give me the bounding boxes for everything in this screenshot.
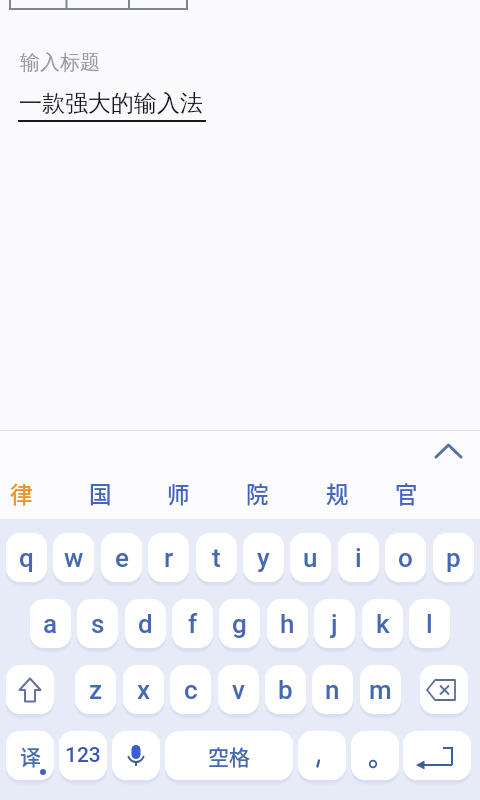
staticText: t: [212, 543, 221, 573]
button[interactable]: o: [385, 533, 426, 582]
button[interactable]: y: [243, 533, 284, 582]
button[interactable]: p: [433, 533, 474, 582]
staticText: 院: [246, 477, 269, 510]
staticText: p: [446, 543, 461, 573]
button[interactable]: g: [219, 599, 260, 648]
button[interactable]: w: [53, 533, 94, 582]
staticText: r: [164, 543, 174, 573]
staticText: 译: [20, 741, 41, 771]
staticText: h: [280, 609, 295, 639]
button[interactable]: l: [409, 599, 450, 648]
staticText: 空格: [208, 741, 250, 771]
button[interactable]: j: [314, 599, 355, 648]
button[interactable]: e: [101, 533, 142, 582]
staticText: 规: [326, 477, 349, 510]
staticText: j: [331, 609, 338, 639]
staticText: m: [369, 675, 392, 705]
staticText: 官: [395, 477, 418, 510]
button[interactable]: [420, 665, 468, 714]
staticText: y: [257, 543, 270, 573]
button[interactable]: [351, 731, 399, 780]
button[interactable]: 院: [235, 474, 279, 512]
button[interactable]: 师: [156, 474, 200, 512]
button[interactable]: 官: [384, 474, 428, 512]
staticText: x: [137, 675, 151, 705]
button[interactable]: a: [30, 599, 71, 648]
button[interactable]: c: [170, 665, 211, 714]
staticText: i: [355, 543, 362, 573]
button[interactable]: 空格: [165, 731, 293, 780]
button[interactable]: 律: [0, 474, 43, 512]
staticText: 一款强大的输入法: [19, 89, 203, 118]
staticText: a: [43, 609, 58, 639]
staticText: 123: [65, 743, 101, 768]
button[interactable]: 规: [315, 474, 359, 512]
staticText: e: [115, 543, 129, 573]
button[interactable]: s: [77, 599, 118, 648]
staticText: l: [426, 609, 433, 639]
button[interactable]: x: [123, 665, 164, 714]
button[interactable]: [298, 731, 346, 780]
staticText: w: [64, 543, 84, 573]
staticText: o: [398, 543, 413, 573]
button[interactable]: m: [360, 665, 401, 714]
staticText: 律: [10, 477, 33, 510]
staticText: g: [232, 609, 247, 639]
staticText: v: [232, 675, 245, 705]
button[interactable]: [112, 731, 160, 780]
staticText: 国: [89, 477, 112, 510]
button[interactable]: k: [362, 599, 403, 648]
button[interactable]: 123: [59, 731, 107, 780]
button[interactable]: 国: [78, 474, 122, 512]
button[interactable]: 译: [6, 731, 54, 780]
staticText: n: [325, 675, 340, 705]
button[interactable]: i: [338, 533, 379, 582]
staticText: f: [188, 609, 198, 639]
button[interactable]: b: [265, 665, 306, 714]
button[interactable]: z: [75, 665, 116, 714]
button[interactable]: v: [218, 665, 259, 714]
button[interactable]: n: [312, 665, 353, 714]
staticText: s: [91, 609, 105, 639]
button[interactable]: d: [125, 599, 166, 648]
button[interactable]: [426, 436, 464, 464]
button[interactable]: r: [148, 533, 189, 582]
staticText: z: [89, 675, 103, 705]
button[interactable]: q: [6, 533, 47, 582]
button[interactable]: [403, 731, 471, 780]
button[interactable]: u: [290, 533, 331, 582]
staticText: b: [278, 675, 293, 705]
staticText: u: [303, 543, 318, 573]
staticText: c: [184, 675, 198, 705]
staticText: 师: [167, 477, 190, 510]
button[interactable]: t: [196, 533, 237, 582]
staticText: 输入标题: [20, 50, 100, 75]
staticText: k: [376, 609, 390, 639]
button[interactable]: f: [172, 599, 213, 648]
staticText: q: [19, 543, 34, 573]
button[interactable]: h: [267, 599, 308, 648]
button[interactable]: [6, 665, 54, 714]
staticText: d: [138, 609, 153, 639]
